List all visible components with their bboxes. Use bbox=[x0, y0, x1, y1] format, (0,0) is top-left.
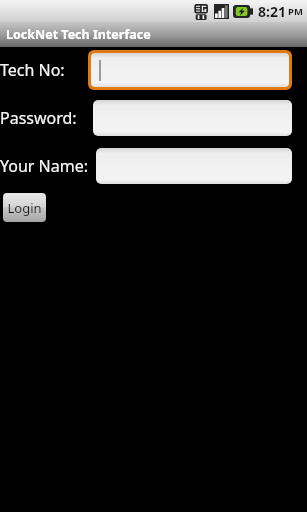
staticText: Tech No: bbox=[0, 59, 88, 81]
staticText: Login bbox=[7, 199, 42, 217]
button[interactable]: Your Name: bbox=[96, 146, 292, 186]
button[interactable]: Login bbox=[3, 193, 46, 222]
staticText: 8:21 bbox=[258, 2, 286, 21]
button[interactable]: Tech No: bbox=[88, 50, 292, 90]
staticText: PM bbox=[288, 5, 303, 18]
staticText: Your Name: bbox=[0, 155, 96, 177]
staticText: Password: bbox=[0, 107, 93, 129]
button[interactable]: Password: bbox=[93, 98, 292, 138]
staticText: LockNet Tech Interface bbox=[6, 26, 151, 43]
